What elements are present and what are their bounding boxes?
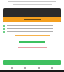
button[interactable] xyxy=(3,27,61,30)
button[interactable] xyxy=(3,60,61,65)
button[interactable] xyxy=(3,8,61,22)
button[interactable] xyxy=(3,24,61,27)
button[interactable] xyxy=(3,30,61,33)
